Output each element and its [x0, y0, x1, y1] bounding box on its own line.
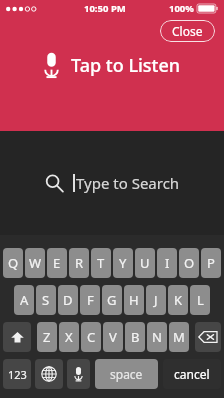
button[interactable]: Y	[113, 248, 133, 278]
staticText: space	[110, 366, 143, 382]
button[interactable]: X	[59, 322, 79, 352]
staticText: A	[20, 291, 29, 309]
staticText: H	[129, 291, 139, 309]
button[interactable]: Change keyboard	[35, 359, 63, 389]
staticText: B	[131, 328, 140, 346]
button[interactable]: V	[103, 322, 123, 352]
staticText: X	[65, 328, 73, 346]
button[interactable]: T	[91, 248, 111, 278]
staticText: D	[63, 291, 73, 309]
staticText: I	[165, 254, 170, 272]
button[interactable]: W	[25, 248, 45, 278]
button[interactable]: C	[81, 322, 101, 352]
button[interactable]: J	[146, 285, 166, 315]
button[interactable]: Q	[3, 248, 23, 278]
button[interactable]: Dictation	[67, 359, 90, 389]
staticText: M	[173, 328, 185, 346]
button[interactable]: Type to Search	[0, 131, 224, 235]
button[interactable]: cancel	[163, 359, 221, 389]
staticText: Tap to Listen	[71, 53, 181, 78]
button[interactable]: space	[95, 359, 158, 389]
staticText: P	[207, 254, 215, 272]
staticText: cancel	[174, 366, 210, 382]
button[interactable]: Backspace	[195, 322, 221, 352]
button[interactable]: K	[168, 285, 188, 315]
staticText: 123	[8, 367, 27, 382]
staticText: Q	[8, 254, 19, 272]
button[interactable]: A	[14, 285, 34, 315]
staticText: Close	[172, 23, 203, 39]
button[interactable]: Shift	[3, 322, 31, 352]
staticText: K	[174, 291, 183, 309]
button[interactable]: I	[157, 248, 177, 278]
staticText: N	[152, 328, 162, 346]
staticText: W	[29, 254, 42, 272]
button[interactable]: S	[36, 285, 56, 315]
staticText: F	[87, 291, 94, 309]
staticText: S	[42, 291, 50, 309]
button[interactable]: F	[80, 285, 100, 315]
button[interactable]: N	[147, 322, 167, 352]
button[interactable]: 123	[3, 359, 31, 389]
button[interactable]: D	[58, 285, 78, 315]
staticText: 100%	[169, 2, 194, 15]
staticText: V	[109, 328, 117, 346]
button[interactable]: R	[69, 248, 89, 278]
staticText: Z	[43, 328, 51, 346]
button[interactable]: L	[190, 285, 210, 315]
button[interactable]: H	[124, 285, 144, 315]
button[interactable]: E	[47, 248, 67, 278]
button[interactable]: U	[135, 248, 155, 278]
button[interactable]: P	[201, 248, 221, 278]
staticText: J	[154, 291, 158, 309]
staticText: G	[107, 291, 117, 309]
button[interactable]: Close	[160, 20, 215, 42]
button[interactable]: O	[179, 248, 199, 278]
staticText: Y	[119, 254, 127, 272]
staticText: Type to Search	[76, 173, 180, 193]
staticText: T	[97, 254, 105, 272]
staticText: L	[197, 291, 204, 309]
staticText: 10:50 PM	[84, 2, 126, 15]
button[interactable]: G	[102, 285, 122, 315]
staticText: U	[140, 254, 150, 272]
button[interactable]: Z	[37, 322, 57, 352]
staticText: E	[53, 254, 61, 272]
staticText: R	[75, 254, 84, 272]
button[interactable]: Tap to Listen	[0, 52, 224, 79]
button[interactable]: B	[125, 322, 145, 352]
staticText: C	[87, 328, 96, 346]
button[interactable]: M	[169, 322, 189, 352]
staticText: O	[184, 254, 195, 272]
